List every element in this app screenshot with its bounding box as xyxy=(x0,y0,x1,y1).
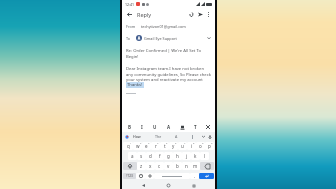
button[interactable]: s xyxy=(137,152,146,160)
button[interactable]: The xyxy=(154,134,163,139)
staticText: g xyxy=(167,153,170,159)
button[interactable]: How xyxy=(132,134,142,139)
button[interactable]: p xyxy=(205,142,214,150)
button[interactable]: m xyxy=(191,162,200,170)
staticText: How xyxy=(133,134,141,139)
button[interactable]: Emoji xyxy=(136,173,145,179)
staticText: p xyxy=(208,143,211,149)
button[interactable]: Shift xyxy=(123,162,137,170)
staticText: z xyxy=(140,163,143,169)
staticText: m xyxy=(193,163,198,169)
staticText: s xyxy=(140,153,143,159)
staticText: b xyxy=(176,163,179,169)
staticText: 3 xyxy=(148,142,150,144)
button[interactable]: r xyxy=(151,142,160,150)
button[interactable]: More xyxy=(201,134,206,139)
button[interactable]: o xyxy=(196,142,205,150)
button[interactable]: v xyxy=(164,162,173,170)
button[interactable]: i xyxy=(187,142,196,150)
staticText: 9 xyxy=(202,142,204,144)
button[interactable]: Home xyxy=(165,182,172,189)
button[interactable]: b xyxy=(173,162,182,170)
button[interactable]: Send xyxy=(196,10,205,19)
button[interactable]: Text color xyxy=(165,123,173,131)
staticText: q xyxy=(127,143,130,149)
button[interactable]: x xyxy=(146,162,155,170)
staticText: f xyxy=(159,153,161,159)
button[interactable]: From xyxy=(126,24,211,29)
staticText: c xyxy=(158,163,161,169)
staticText: k xyxy=(194,153,197,159)
button[interactable]: More options xyxy=(205,11,212,18)
staticText: y xyxy=(172,143,175,149)
button[interactable]: l xyxy=(200,152,209,160)
button[interactable]: Space xyxy=(154,173,190,179)
button[interactable]: To xyxy=(126,35,211,41)
staticText: I xyxy=(141,124,143,130)
staticText: 1 xyxy=(130,142,132,144)
button[interactable]: g xyxy=(164,152,173,160)
staticText: ?123 xyxy=(126,174,133,178)
staticText: U xyxy=(153,124,157,130)
button[interactable]: j xyxy=(182,152,191,160)
staticText: o xyxy=(199,143,202,149)
button[interactable]: Attach file xyxy=(187,10,196,19)
staticText: j xyxy=(186,153,188,159)
staticText: a xyxy=(131,153,134,159)
button[interactable]: Italic xyxy=(138,123,146,131)
button[interactable]: c xyxy=(155,162,164,170)
staticText: 7 xyxy=(184,142,186,144)
button[interactable]: Back xyxy=(140,182,147,189)
button[interactable]: y xyxy=(169,142,178,150)
button[interactable]: A xyxy=(174,134,179,139)
button[interactable]: e xyxy=(142,142,151,150)
button[interactable]: d xyxy=(146,152,155,160)
button[interactable]: . xyxy=(190,173,199,179)
button[interactable]: q xyxy=(123,142,133,150)
staticText: B xyxy=(128,124,131,130)
staticText: techytizon01@gmail.com xyxy=(141,24,186,29)
staticText: t xyxy=(164,143,166,149)
button[interactable] xyxy=(190,135,194,139)
button[interactable]: Close xyxy=(204,123,212,131)
staticText: v xyxy=(167,163,170,169)
button[interactable]: z xyxy=(137,162,146,170)
button[interactable]: f xyxy=(155,152,164,160)
button[interactable]: Symbols xyxy=(123,173,136,179)
staticText: w xyxy=(136,143,140,149)
staticText: Gmail Eye Support xyxy=(144,36,177,41)
button[interactable]: Enter xyxy=(199,173,214,179)
button[interactable]: Backspace xyxy=(200,162,214,170)
staticText: u xyxy=(181,143,184,149)
button[interactable]: w xyxy=(133,142,142,150)
staticText: 0 xyxy=(211,142,213,144)
staticText: d xyxy=(149,153,152,159)
button[interactable]: a xyxy=(128,152,137,160)
button[interactable]: Settings xyxy=(145,173,154,179)
staticText: From xyxy=(126,24,136,29)
button[interactable]: Recents xyxy=(190,182,197,189)
button[interactable]: n xyxy=(182,162,191,170)
staticText: Thanks! xyxy=(127,82,143,88)
staticText: Dear Instagram team.I have not broken an… xyxy=(126,66,211,82)
button[interactable]: Voice input xyxy=(207,134,212,139)
button[interactable]: Back xyxy=(125,10,134,19)
button[interactable]: h xyxy=(173,152,182,160)
staticText: r xyxy=(155,143,157,149)
staticText: e xyxy=(145,143,148,149)
staticText: h xyxy=(176,153,179,159)
staticText: 12:41 xyxy=(125,2,134,7)
staticText: Reply xyxy=(137,11,152,18)
button[interactable]: t xyxy=(160,142,169,150)
button[interactable]: k xyxy=(191,152,200,160)
staticText: l xyxy=(204,153,206,159)
button[interactable]: Bold xyxy=(125,123,133,131)
staticText: 4 xyxy=(157,142,159,144)
staticText: n xyxy=(185,163,188,169)
button[interactable]: Highlight xyxy=(178,123,186,131)
staticText: To xyxy=(126,36,131,41)
button[interactable]: u xyxy=(178,142,187,150)
button[interactable]: Clear formatting xyxy=(191,123,199,131)
button[interactable]: Underline xyxy=(151,123,159,131)
button[interactable] xyxy=(125,135,129,139)
